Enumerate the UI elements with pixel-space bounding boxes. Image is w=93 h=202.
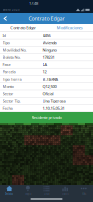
staticText: B-TIERRA: [42, 76, 58, 82]
staticText: Boleta No.: [2, 55, 20, 60]
button[interactable]: Back: [0, 13, 10, 24]
staticText: 17:48: [29, 1, 38, 6]
button[interactable]: Más: [74, 185, 93, 196]
staticText: Sector Tip.: [2, 98, 20, 103]
button[interactable]: Inicio: [0, 185, 19, 196]
staticText: Oficial: [42, 91, 53, 96]
staticText: Contrato Edgar: [10, 25, 36, 30]
staticText: I-A: [42, 62, 47, 67]
staticText: Lista: [44, 192, 49, 196]
staticText: Monto: [2, 84, 13, 89]
button[interactable]: Mapa: [19, 185, 37, 196]
staticText: Tipo Tierra: [2, 76, 21, 82]
staticText: Datos: [62, 192, 69, 196]
staticText: Enero 2025: [3, 8, 20, 11]
staticText: Q12,500: [42, 84, 56, 89]
staticText: Inicio: [5, 192, 13, 196]
staticText: 178231: [42, 55, 54, 60]
button[interactable]: Modificaciones: [46, 24, 93, 32]
staticText: Movilidad No.: [2, 47, 26, 53]
staticText: Ninguno: [42, 47, 56, 53]
staticText: Parcela: [2, 69, 15, 74]
button[interactable]: Lista: [37, 185, 56, 196]
staticText: Fecha: [2, 105, 12, 111]
staticText: Fase: [2, 62, 10, 67]
staticText: Tipo: [2, 40, 9, 45]
staticText: Modificaciones: [57, 25, 83, 30]
staticText: Más: [82, 192, 86, 196]
staticText: 12: [42, 69, 46, 74]
staticText: Id: [2, 33, 5, 38]
button[interactable]: Contrato Edgar: [0, 24, 46, 32]
staticText: 1-10-15-05-31: [42, 105, 64, 111]
staticText: Vivienda: [42, 40, 56, 45]
staticText: Mapa: [25, 192, 31, 196]
staticText: Contrato Edgar: [28, 15, 64, 22]
staticText: Una Tiperosa: [42, 98, 65, 103]
button[interactable]: Residente privado: [0, 112, 93, 123]
staticText: 4456: [42, 33, 50, 38]
staticText: Sector: [2, 91, 13, 96]
staticText: Residente privado: [31, 115, 61, 120]
button[interactable]: Datos: [56, 185, 74, 196]
